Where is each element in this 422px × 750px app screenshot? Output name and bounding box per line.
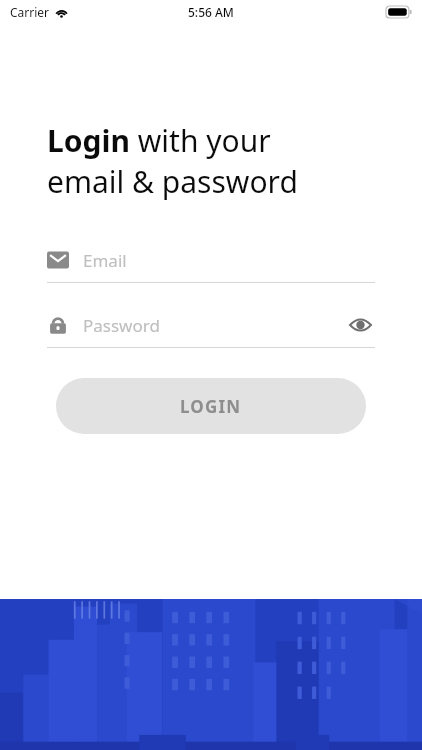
other: Email [47, 249, 69, 271]
button[interactable]: Email [47, 238, 375, 283]
other: Password [47, 314, 69, 336]
staticText: Email [83, 249, 127, 272]
button[interactable]: LOGIN [56, 378, 366, 434]
staticText: LOGIN [180, 395, 242, 418]
button[interactable]: Password [47, 303, 375, 348]
staticText: Password [83, 314, 160, 337]
staticText: Login with your email & password [47, 120, 298, 202]
button[interactable]: Show password [345, 310, 375, 340]
staticText: Carrier [10, 4, 50, 20]
staticText: 5:56 AM [188, 4, 234, 20]
